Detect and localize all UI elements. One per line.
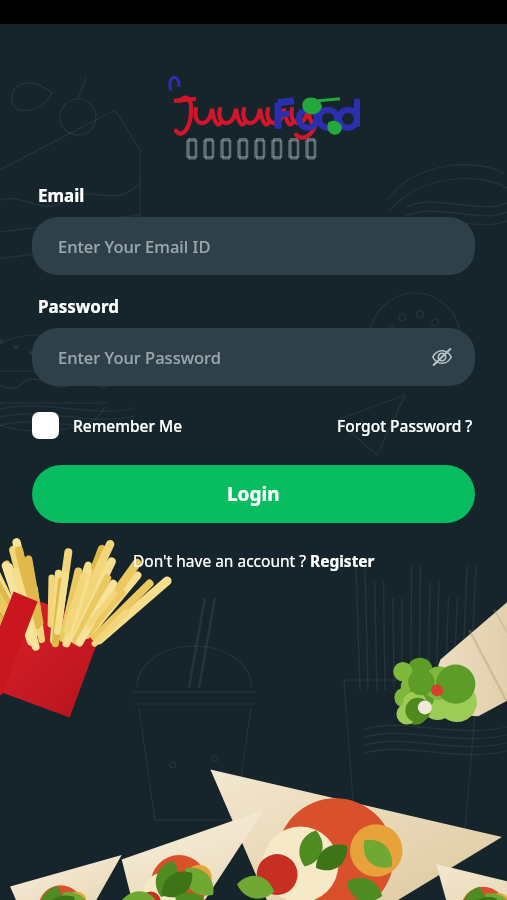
button[interactable]: Enter Your Password (32, 328, 475, 386)
staticText: Remember Me (73, 415, 183, 436)
button[interactable]: Login (32, 465, 475, 523)
staticText: Enter Your Email ID (58, 235, 211, 257)
button[interactable]: Don't have an account ? (129, 547, 379, 574)
staticText: Don't have an account ? (133, 550, 310, 571)
staticText: Enter Your Password (58, 346, 221, 368)
button[interactable]: Enter Your Email ID (32, 217, 475, 275)
button[interactable]: Remember Me (32, 408, 183, 443)
staticText: Password (38, 295, 119, 318)
staticText: Login (227, 481, 280, 507)
staticText: Forgot Password ? (337, 415, 473, 436)
button[interactable]: Forgot Password ? (335, 411, 475, 440)
button[interactable]: Show password (425, 340, 459, 374)
staticText: Register (310, 550, 375, 571)
staticText: Email (38, 184, 85, 207)
